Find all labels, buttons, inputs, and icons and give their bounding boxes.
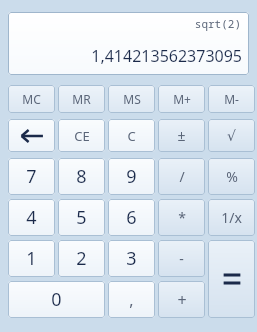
staticText: 1,414213562373095 — [91, 45, 242, 67]
staticText: / — [179, 167, 185, 186]
button[interactable]: + — [158, 281, 205, 318]
staticText: 7 — [26, 164, 37, 189]
button[interactable]: MS — [108, 85, 155, 113]
button[interactable]: M+ — [158, 85, 205, 113]
button[interactable]: % — [208, 158, 255, 195]
button[interactable]: CE — [58, 119, 105, 152]
button[interactable]: 5 — [58, 199, 105, 236]
button[interactable]: , — [108, 281, 155, 318]
staticText: + — [177, 289, 187, 311]
button[interactable]: Backspace — [8, 119, 55, 152]
staticText: 6 — [126, 205, 137, 230]
staticText: ± — [177, 126, 186, 145]
button[interactable]: Equals — [208, 240, 255, 318]
button[interactable]: √ — [208, 119, 255, 152]
staticText: M- — [224, 91, 239, 107]
button[interactable]: ± — [158, 119, 205, 152]
button[interactable]: C — [108, 119, 155, 152]
staticText: 5 — [76, 205, 87, 230]
staticText: sqrt(2) — [194, 16, 241, 31]
button[interactable]: 7 — [8, 158, 55, 195]
staticText: MC — [22, 91, 41, 107]
staticText: MS — [123, 91, 141, 107]
button[interactable]: * — [158, 199, 205, 236]
staticText: - — [179, 249, 184, 268]
staticText: 3 — [126, 246, 137, 271]
staticText: √ — [227, 128, 236, 144]
staticText: * — [178, 208, 186, 227]
button[interactable]: 6 — [108, 199, 155, 236]
staticText: MR — [72, 91, 91, 107]
button[interactable]: 8 — [58, 158, 105, 195]
button[interactable]: - — [158, 240, 205, 277]
button[interactable]: / — [158, 158, 205, 195]
button[interactable]: 1/x — [208, 199, 255, 236]
staticText: C — [127, 127, 136, 145]
button[interactable]: sqrt(2) — [8, 12, 249, 75]
button[interactable]: MR — [58, 85, 105, 113]
staticText: CE — [74, 127, 90, 145]
staticText: M+ — [173, 91, 191, 107]
button[interactable]: 3 — [108, 240, 155, 277]
staticText: 1/x — [221, 208, 242, 227]
staticText: , — [129, 289, 134, 311]
staticText: 4 — [26, 205, 37, 230]
staticText: 0 — [51, 287, 62, 312]
button[interactable]: 1 — [8, 240, 55, 277]
staticText: 8 — [76, 164, 87, 189]
button[interactable]: 9 — [108, 158, 155, 195]
button[interactable]: M- — [208, 85, 255, 113]
staticText: 2 — [76, 246, 87, 271]
button[interactable]: 0 — [8, 281, 105, 318]
button[interactable]: 2 — [58, 240, 105, 277]
button[interactable]: MC — [8, 85, 55, 113]
staticText: 1 — [26, 246, 37, 271]
staticText: 9 — [126, 164, 137, 189]
staticText: % — [226, 167, 238, 186]
button[interactable]: 4 — [8, 199, 55, 236]
